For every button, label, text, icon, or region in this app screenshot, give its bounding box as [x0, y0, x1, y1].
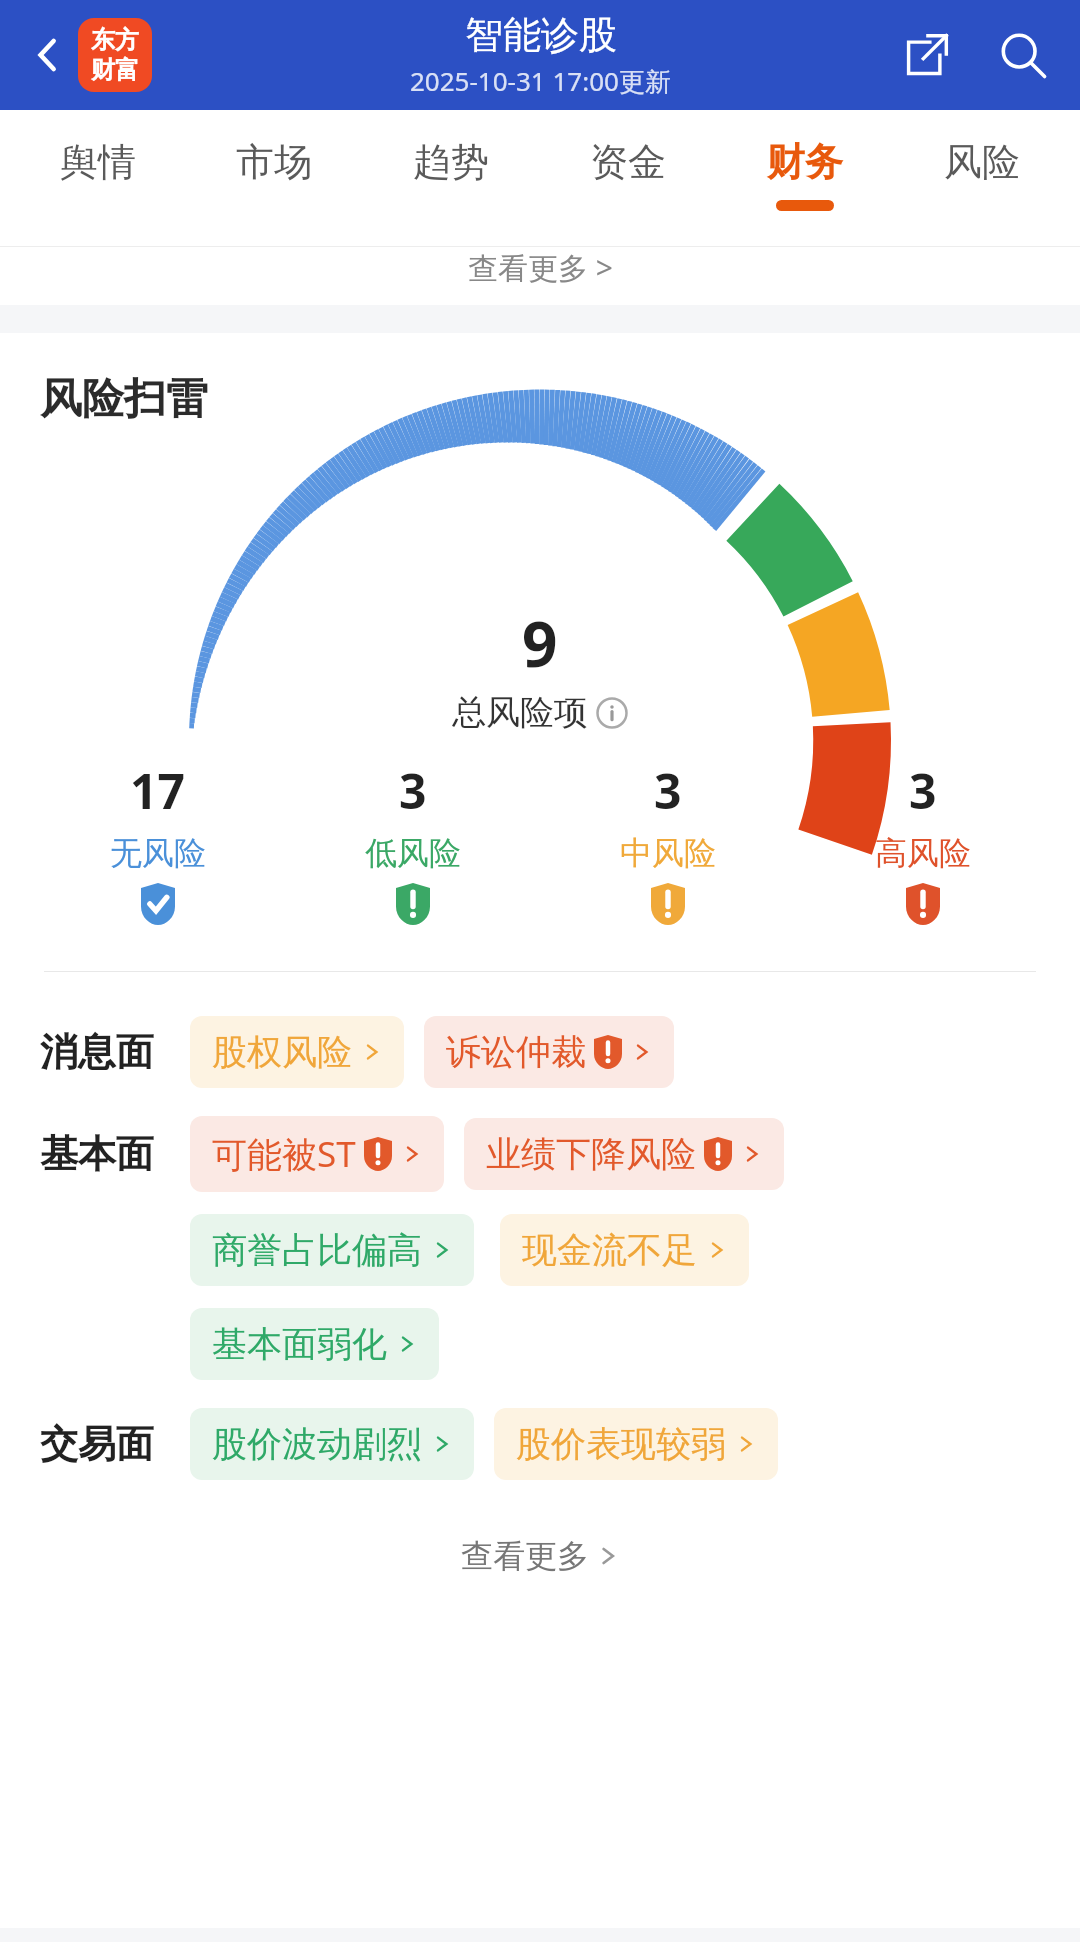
staticText: 高风险: [875, 833, 971, 873]
button[interactable]: Info: [596, 697, 628, 729]
button[interactable]: 舆情: [10, 110, 186, 247]
staticText: 3: [399, 758, 427, 823]
button[interactable]: 可能被ST: [190, 1116, 444, 1192]
button[interactable]: 业绩下降风险: [464, 1118, 784, 1190]
staticText: 东方: [91, 25, 139, 55]
button[interactable]: 3: [540, 758, 795, 925]
staticText: 3: [909, 758, 937, 823]
staticText: 市场: [236, 138, 312, 186]
staticText: 可能被ST: [212, 1130, 356, 1178]
staticText: 智能诊股: [465, 11, 617, 59]
staticText: 财务: [767, 138, 843, 186]
staticText: 趋势: [413, 138, 489, 186]
button[interactable]: 商誉占比偏高: [190, 1214, 474, 1286]
button[interactable]: Search: [988, 20, 1058, 90]
staticText: 风险: [944, 138, 1020, 186]
button[interactable]: 趋势: [362, 110, 539, 247]
button[interactable]: 诉讼仲裁: [424, 1016, 674, 1088]
staticText: 基本面弱化: [212, 1322, 387, 1366]
staticText: 17: [130, 758, 185, 823]
button[interactable]: 3: [795, 758, 1050, 925]
staticText: 无风险: [110, 833, 206, 873]
button[interactable]: 3: [285, 758, 540, 925]
button[interactable]: 查看更多: [0, 1508, 1080, 1604]
button[interactable]: 股价表现较弱: [494, 1408, 778, 1480]
button[interactable]: 股价波动剧烈: [190, 1408, 474, 1480]
staticText: 交易面: [40, 1420, 190, 1468]
button[interactable]: 财务: [716, 110, 893, 247]
button[interactable]: East Money: [78, 18, 152, 92]
staticText: 商誉占比偏高: [212, 1228, 422, 1272]
staticText: 舆情: [60, 138, 136, 186]
staticText: 股价波动剧烈: [212, 1422, 422, 1466]
button[interactable]: Share: [892, 20, 962, 90]
button[interactable]: 资金: [539, 110, 716, 247]
staticText: 资金: [590, 138, 666, 186]
button[interactable]: 股权风险: [190, 1016, 404, 1088]
staticText: 基本面: [40, 1130, 190, 1178]
button[interactable]: Back: [18, 28, 72, 82]
staticText: 总风险项: [452, 691, 588, 734]
staticText: 风险扫雷: [40, 373, 208, 426]
staticText: 低风险: [365, 833, 461, 873]
staticText: 9: [522, 601, 558, 685]
button[interactable]: 基本面弱化: [190, 1308, 439, 1380]
button[interactable]: 风险: [893, 110, 1070, 247]
staticText: 财富: [91, 55, 139, 85]
staticText: 现金流不足: [522, 1228, 697, 1272]
staticText: 查看更多: [461, 1536, 589, 1576]
staticText: 2025-10-31 17:00更新: [410, 63, 671, 99]
staticText: 股价表现较弱: [516, 1422, 726, 1466]
button[interactable]: 现金流不足: [500, 1214, 749, 1286]
staticText: 3: [654, 758, 682, 823]
staticText: 诉讼仲裁: [446, 1030, 586, 1074]
button[interactable]: 17: [30, 758, 285, 925]
staticText: 消息面: [40, 1028, 190, 1076]
staticText: 查看更多 >: [468, 247, 613, 288]
staticText: 中风险: [620, 833, 716, 873]
staticText: 业绩下降风险: [486, 1132, 696, 1176]
staticText: 股权风险: [212, 1030, 352, 1074]
button[interactable]: 市场: [186, 110, 362, 247]
